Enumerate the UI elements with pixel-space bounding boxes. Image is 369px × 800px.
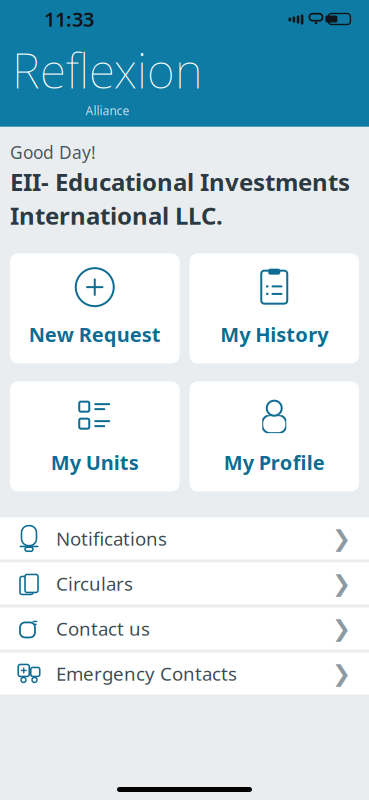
- button[interactable]: New Request: [10, 253, 179, 363]
- staticText: Reflexion: [12, 38, 203, 102]
- staticText: Good Day!: [10, 141, 96, 164]
- staticText: International LLC.: [10, 200, 223, 231]
- button[interactable]: Circulars: [0, 562, 369, 604]
- staticText: Contact us: [56, 616, 150, 641]
- staticText: ❯: [332, 616, 351, 641]
- staticText: Notifications: [56, 526, 167, 551]
- staticText: ❯: [332, 526, 351, 551]
- button[interactable]: My History: [189, 253, 359, 363]
- button[interactable]: My Profile: [189, 381, 359, 491]
- button[interactable]: Contact us: [0, 607, 369, 649]
- staticText: ❯: [332, 571, 351, 596]
- button[interactable]: Emergency Contacts: [0, 652, 369, 694]
- staticText: EII- Educational Investments: [10, 166, 350, 198]
- button[interactable]: Notifications: [0, 517, 369, 559]
- staticText: New Request: [29, 321, 161, 347]
- staticText: My History: [220, 321, 328, 347]
- staticText: My Profile: [224, 449, 325, 475]
- staticText: Circulars: [56, 571, 133, 596]
- staticText: Alliance: [85, 103, 129, 119]
- staticText: Emergency Contacts: [56, 661, 237, 686]
- button[interactable]: My Units: [10, 381, 179, 491]
- staticText: 11:33: [44, 6, 94, 32]
- staticText: ❯: [332, 661, 351, 686]
- staticText: My Units: [51, 449, 139, 475]
